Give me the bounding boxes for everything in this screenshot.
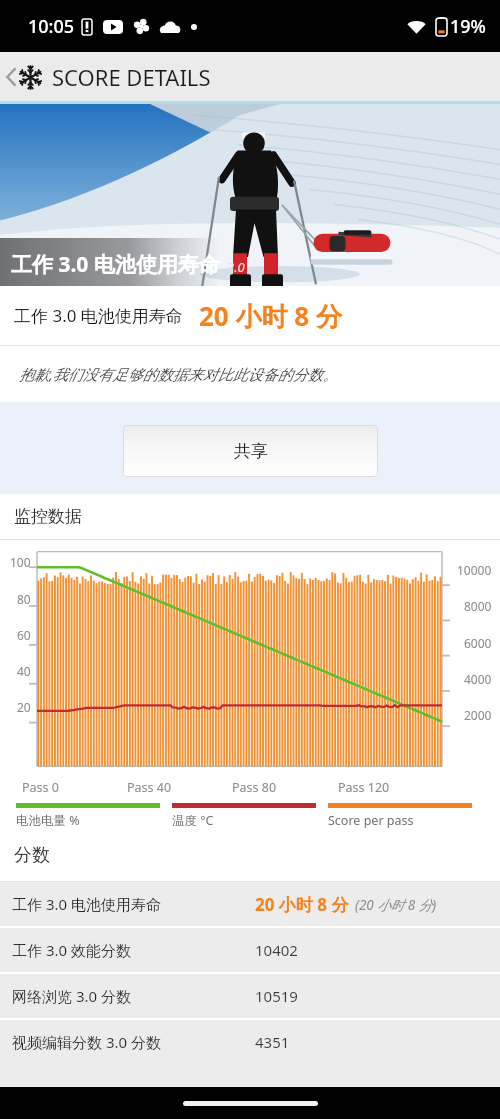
staticText: 电池电量 %: [16, 812, 80, 829]
staticText: SCORE DETAILS: [52, 62, 211, 92]
staticText: 分数: [14, 844, 50, 867]
staticText: 80: [17, 591, 31, 607]
staticText: 工作 3.0 电池使用寿命: [14, 304, 183, 327]
button[interactable]: 工作 3.0 电池使用寿命: [0, 882, 500, 926]
staticText: 10402: [255, 940, 298, 960]
button[interactable]: 视频编辑分数 3.0 分数: [0, 1020, 500, 1064]
staticText: 2000: [464, 707, 492, 723]
staticText: (20 小时 8 分): [355, 896, 437, 914]
button[interactable]: 网络浏览 3.0 分数: [0, 974, 500, 1018]
staticText: 20: [17, 699, 31, 715]
staticText: 60: [17, 627, 31, 643]
staticText: 监控数据: [14, 506, 82, 527]
staticText: 10519: [255, 986, 298, 1006]
staticText: 10000: [457, 562, 492, 578]
staticText: Pass 0: [22, 779, 59, 796]
staticText: 视频编辑分数 3.0 分数: [12, 1032, 161, 1052]
staticText: 10:05: [28, 14, 75, 39]
staticText: 4000: [464, 671, 492, 687]
staticText: 工作 3.0 效能分数: [12, 940, 131, 960]
button[interactable]: 共享: [123, 425, 378, 477]
staticText: 共享: [234, 441, 268, 462]
button[interactable]: Back to scores: [0, 57, 223, 97]
staticText: 6000: [464, 635, 492, 651]
staticText: 抱歉,我们没有足够的数据来对比此设备的分数。: [19, 364, 338, 384]
staticText: 20 小时 8 分: [199, 298, 342, 334]
staticText: 8000: [464, 598, 492, 614]
staticText: 温度 °C: [172, 812, 214, 829]
staticText: 网络浏览 3.0 分数: [12, 986, 131, 1006]
staticText: 3.0: [227, 258, 245, 276]
staticText: Pass 120: [338, 779, 390, 796]
staticText: 40: [17, 663, 31, 679]
staticText: Pass 40: [127, 779, 172, 796]
staticText: 4351: [255, 1032, 290, 1052]
staticText: 20 小时 8 分: [255, 893, 349, 916]
staticText: 19%: [450, 14, 486, 39]
staticText: Score per pass: [328, 812, 414, 829]
button[interactable]: 工作 3.0 效能分数: [0, 928, 500, 972]
staticText: 工作 3.0 电池使用寿命: [11, 250, 220, 279]
staticText: 100: [10, 554, 31, 570]
staticText: Pass 80: [232, 779, 277, 796]
staticText: 工作 3.0 电池使用寿命: [12, 894, 161, 914]
